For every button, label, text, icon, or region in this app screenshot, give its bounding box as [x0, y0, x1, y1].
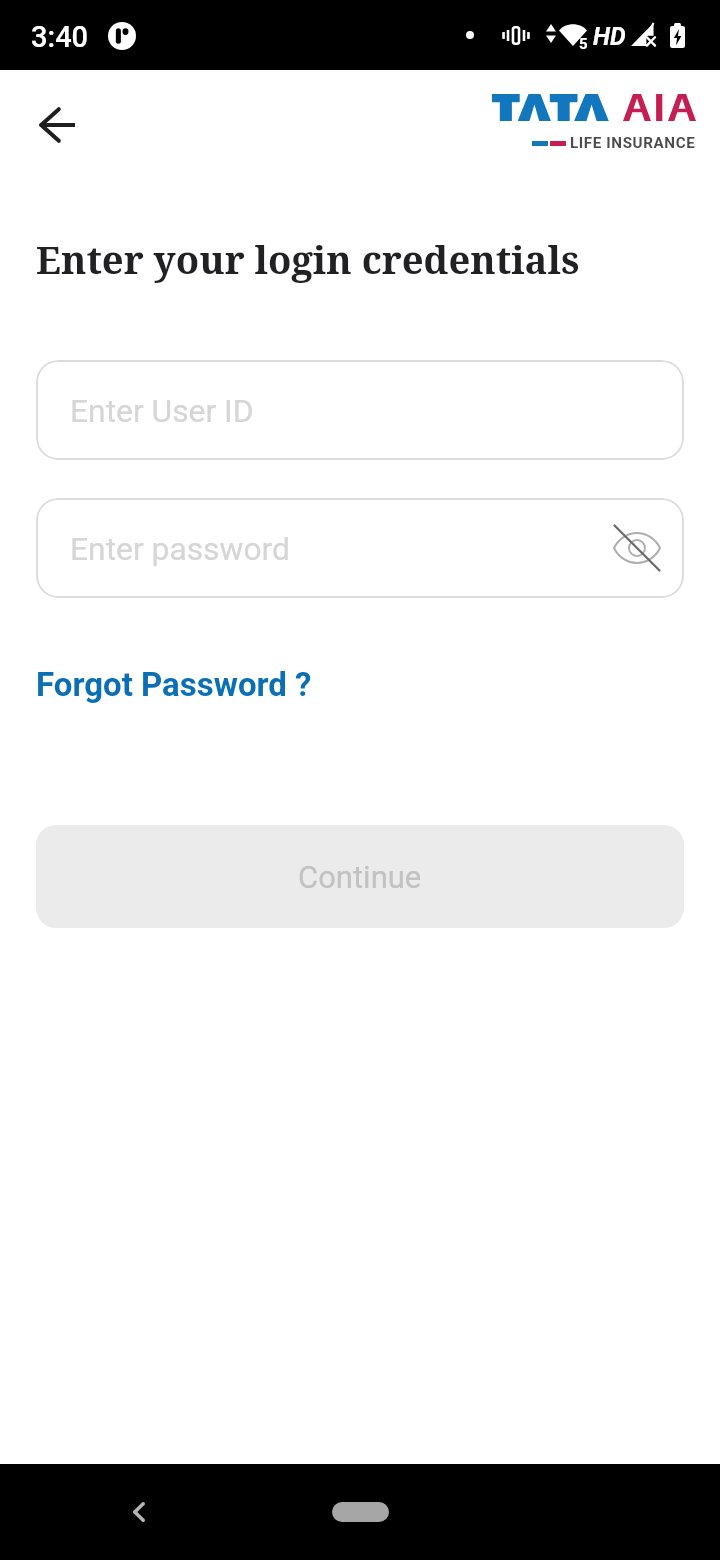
staticText: LIFE INSURANCE [570, 134, 696, 152]
button[interactable]: Enter User ID [36, 360, 684, 460]
staticText: Enter your login credentials [36, 233, 580, 285]
staticText: Enter password [70, 530, 290, 567]
button[interactable]: Show password [603, 514, 671, 582]
staticText: 3:40 [31, 20, 89, 54]
button[interactable]: Back [109, 1482, 169, 1542]
button[interactable]: Forgot Password ? [36, 661, 312, 708]
button[interactable]: Enter password [36, 498, 684, 598]
staticText: Enter User ID [70, 392, 254, 429]
staticText: HD [593, 22, 626, 51]
button[interactable]: Back [33, 101, 81, 149]
button[interactable]: Home [332, 1502, 389, 1522]
staticText: 5 [579, 35, 588, 53]
button[interactable]: Continue [36, 825, 684, 928]
staticText: Continue [298, 859, 422, 895]
